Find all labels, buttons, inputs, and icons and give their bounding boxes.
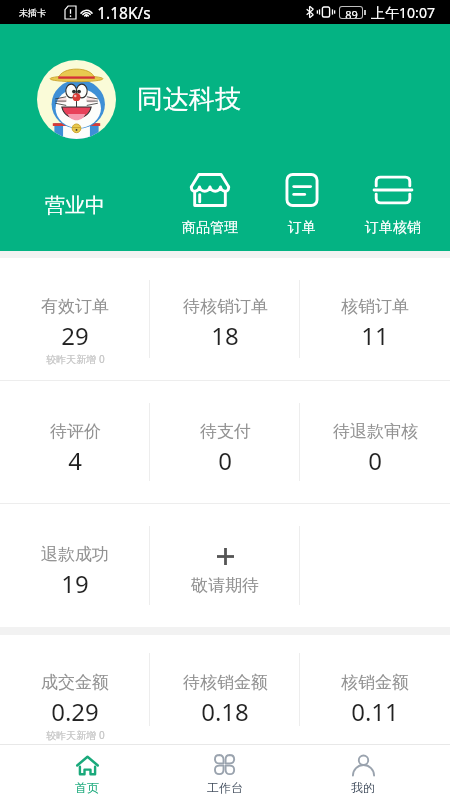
button[interactable]: 核销金额 [300,635,450,744]
staticText: 19 [61,567,89,600]
staticText: 核销金额 [341,672,409,693]
button[interactable]: 订单核销 [356,173,430,237]
button[interactable]: 待支付 [150,381,300,503]
staticText: 上午10:07 [371,3,435,22]
staticText: 订单 [288,219,316,237]
button[interactable]: 我的 [294,745,432,800]
staticText: 待退款审核 [333,421,418,442]
button[interactable]: 工作台 [156,745,294,800]
staticText: 0.11 [351,695,399,728]
staticText: 成交金额 [41,672,109,693]
staticText: 退款成功 [41,544,109,565]
staticText: 我的 [351,780,375,795]
button[interactable]: 首页 [18,745,156,800]
staticText: 0.18 [201,695,249,728]
button[interactable]: 待核销订单 [150,258,300,380]
staticText: 待评价 [50,421,101,442]
staticText: 商品管理 [182,219,238,237]
staticText: 订单核销 [365,219,421,237]
staticText: 0 [218,444,232,477]
staticText: 1.18K/s [97,2,151,23]
staticText: 待核销订单 [183,296,268,317]
button[interactable]: 有效订单 [0,258,150,380]
staticText: 0 [368,444,382,477]
staticText: 89 [345,7,358,18]
button[interactable]: 核销订单 [300,258,450,380]
staticText: 0.29 [51,695,99,728]
staticText: 核销订单 [341,296,409,317]
staticText: 有效订单 [41,296,109,317]
button[interactable]: 待核销金额 [150,635,300,744]
button[interactable]: 敬请期待 [150,504,300,627]
staticText: 工作台 [207,780,243,795]
staticText: 较昨天新增 0 [46,352,105,366]
button[interactable]: 待退款审核 [300,381,450,503]
staticText: 待核销金额 [183,672,268,693]
staticText: 待支付 [200,421,251,442]
staticText: 同达科技 [137,83,241,116]
staticText: 敬请期待 [191,575,259,596]
staticText: 营业中 [45,193,105,218]
staticText: 4 [68,444,82,477]
staticText: 首页 [75,780,99,795]
staticText: 11 [361,319,389,352]
staticText: 18 [211,319,239,352]
button[interactable]: 待评价 [0,381,150,503]
staticText: 29 [61,319,89,352]
button[interactable]: 退款成功 [0,504,150,627]
button[interactable]: 成交金额 [0,635,150,744]
button[interactable]: 商品管理 [173,173,247,237]
button[interactable]: 订单 [265,173,339,237]
staticText: 较昨天新增 0 [46,728,105,742]
staticText: 未插卡 [19,7,46,18]
